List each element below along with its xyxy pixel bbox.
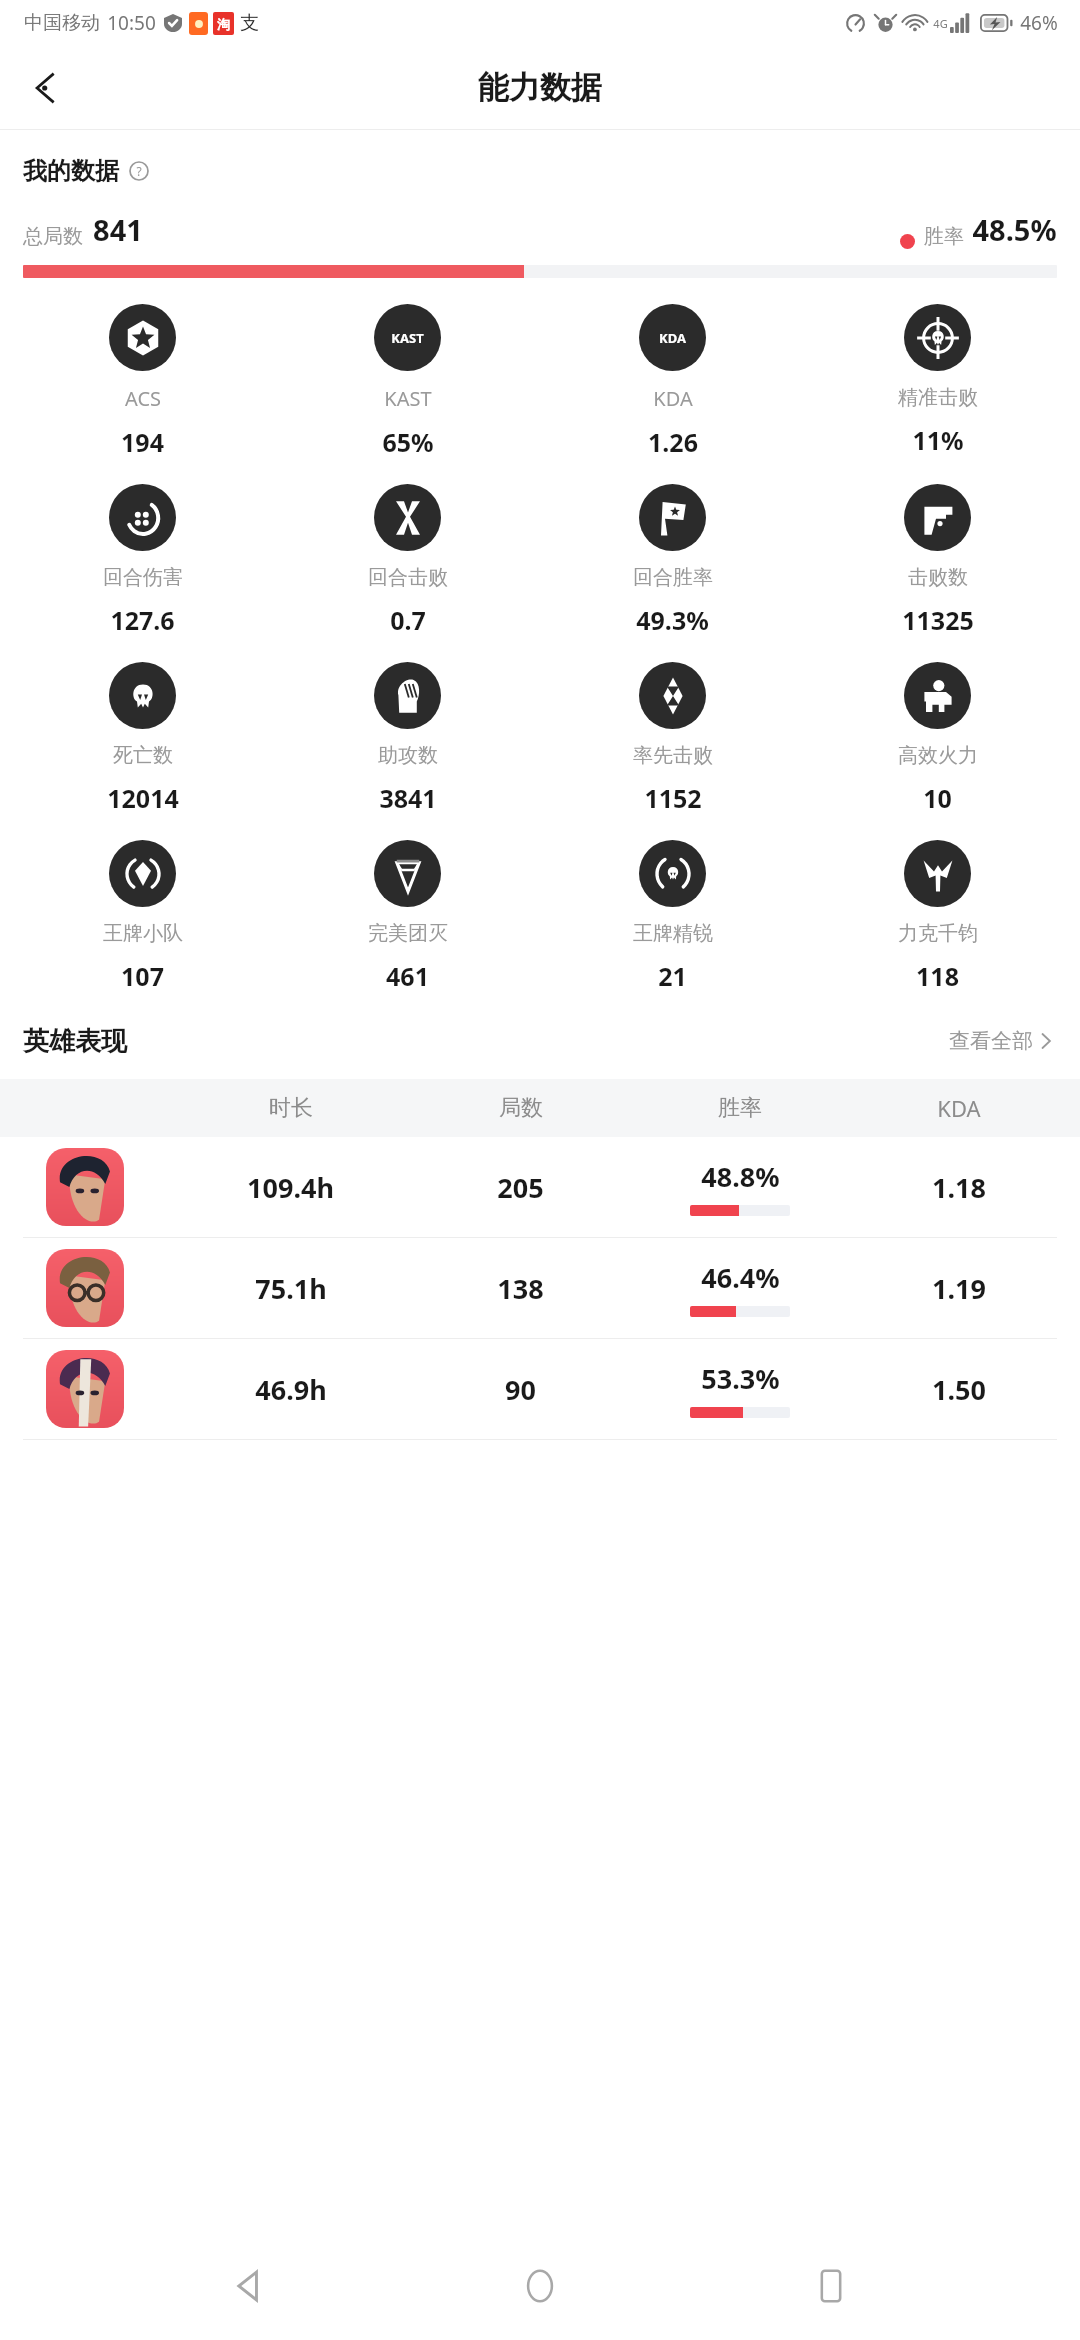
staticText: 841 [93,210,143,249]
staticText: 查看全部 [949,1028,1033,1054]
button[interactable]: 力克千钧 [805,838,1070,995]
button[interactable]: 回合伤害 [10,482,275,639]
staticText: 能力数据 [478,68,602,107]
button[interactable]: 109.4h [0,1137,1080,1237]
staticText: 1.26 [648,425,698,459]
button[interactable]: 返回 [207,2244,291,2328]
staticText: 12014 [107,781,179,815]
button[interactable]: 说明 [127,159,151,183]
staticText: KDA [653,385,693,412]
staticText: 194 [121,425,164,459]
staticText: 高效火力 [898,743,978,768]
staticText: 48.8% [701,1158,780,1195]
staticText: 回合击败 [368,565,448,590]
staticText: 49.3% [636,603,709,637]
staticText: 65% [382,425,434,459]
staticText: 11325 [902,603,974,637]
staticText: 107 [121,959,164,993]
staticText: KAST [384,385,432,412]
button[interactable]: 最近任务 [789,2244,873,2328]
staticText: 3841 [379,781,437,815]
button[interactable]: 回合击败 [275,482,540,639]
button[interactable]: 75.1h [0,1238,1080,1338]
staticText: 205 [497,1169,544,1206]
staticText: KDA [659,329,686,347]
staticText: 时长 [269,1094,313,1122]
staticText: 完美团灭 [368,921,448,946]
staticText: 胜率 [718,1094,762,1122]
button[interactable]: 46.9h [0,1339,1080,1439]
button[interactable]: 查看全部 [945,1024,1057,1058]
button[interactable]: KAST [275,302,540,461]
staticText: 53.3% [701,1360,780,1397]
staticText: 精准击败 [898,385,978,410]
staticText: 王牌精锐 [633,921,713,946]
button[interactable]: 高效火力 [805,660,1070,817]
staticText: 4G [933,16,948,31]
button[interactable]: ACS [10,302,275,461]
staticText: 支 [240,11,259,35]
staticText: 0.7 [390,603,426,637]
staticText: 46.4% [701,1259,780,1296]
staticText: 48.5% [972,210,1057,249]
button[interactable]: 主页 [498,2244,582,2328]
staticText: 局数 [499,1094,543,1122]
staticText: 1.50 [932,1371,986,1408]
button[interactable]: 死亡数 [10,660,275,817]
button[interactable]: 回合胜率 [540,482,805,639]
staticText: 461 [386,959,429,993]
staticText: 90 [505,1371,536,1408]
staticText: 力克千钧 [898,921,978,946]
staticText: 1152 [644,781,702,815]
staticText: 127.6 [110,603,175,637]
staticText: 46% [1020,10,1058,36]
staticText: 中国移动 [24,11,100,35]
button[interactable]: 王牌小队 [10,838,275,995]
staticText: 击败数 [908,565,968,590]
button[interactable]: 返回 [16,58,76,118]
staticText: 21 [658,959,687,993]
staticText: 回合胜率 [633,565,713,590]
staticText: KAST [391,329,424,347]
staticText: 回合伤害 [103,565,183,590]
staticText: 75.1h [255,1270,327,1307]
staticText: 率先击败 [633,743,713,768]
staticText: KDA [937,1093,981,1123]
staticText: 118 [916,959,959,993]
staticText: 王牌小队 [103,921,183,946]
staticText: 10 [923,781,952,815]
staticText: 10:50 [107,10,156,36]
staticText: 助攻数 [378,743,438,768]
staticText: 11% [912,423,964,457]
button[interactable]: 率先击败 [540,660,805,817]
staticText: 1.18 [932,1169,986,1206]
staticText: 英雄表现 [23,1025,127,1058]
button[interactable]: 助攻数 [275,660,540,817]
staticText: 1.19 [932,1270,986,1307]
staticText: 淘 [217,16,230,32]
button[interactable]: 王牌精锐 [540,838,805,995]
button[interactable]: 完美团灭 [275,838,540,995]
staticText: 138 [497,1270,544,1307]
button[interactable]: 击败数 [805,482,1070,639]
staticText: 死亡数 [113,743,173,768]
staticText: 109.4h [247,1169,334,1206]
staticText: 我的数据 [23,156,119,186]
button[interactable]: 精准击败 [805,302,1070,459]
staticText: 46.9h [255,1371,327,1408]
staticText: ? [136,163,142,179]
button[interactable]: KDA [540,302,805,461]
staticText: 总局数 [23,224,83,249]
staticText: ACS [125,385,161,412]
staticText: 胜率 [924,224,964,249]
